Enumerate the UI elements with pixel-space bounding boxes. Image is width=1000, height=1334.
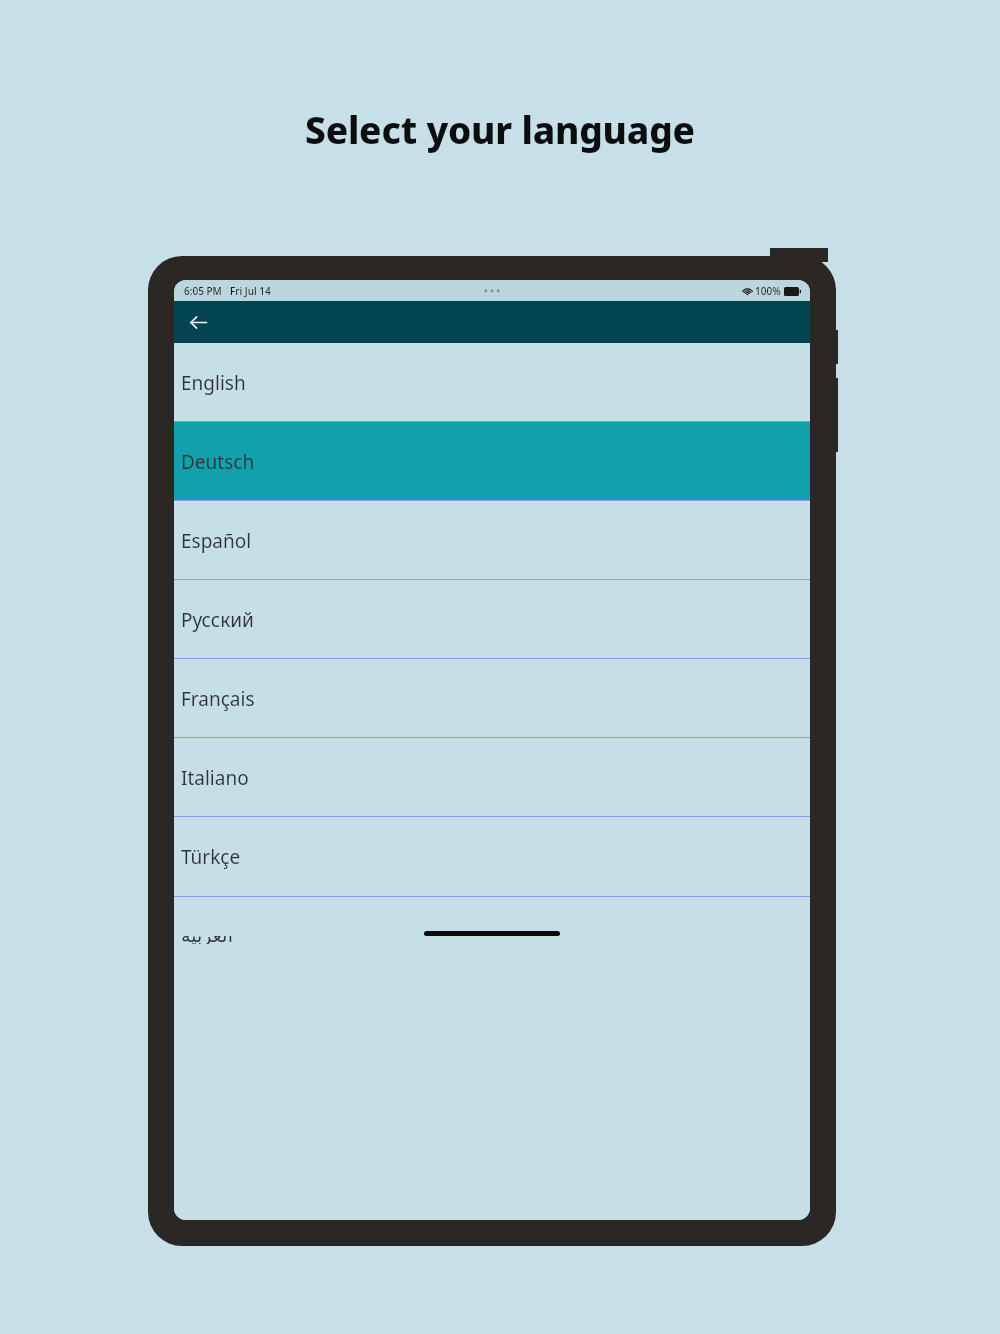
button[interactable]: Deutsch — [174, 422, 810, 501]
button[interactable]: Русский — [174, 580, 810, 659]
staticText: 6:05 PM — [184, 284, 222, 298]
staticText: Español — [181, 528, 252, 554]
staticText: Русский — [181, 607, 254, 633]
staticText: Fri Jul 14 — [230, 284, 271, 298]
button[interactable]: Türkçe — [174, 817, 810, 896]
staticText: 100% — [755, 284, 781, 298]
button[interactable]: Español — [174, 501, 810, 580]
button[interactable]: English — [174, 343, 810, 422]
staticText: Select your language — [305, 104, 695, 154]
button[interactable]: Back — [178, 302, 218, 342]
button[interactable]: Français — [174, 659, 810, 738]
staticText: العربية — [181, 936, 233, 944]
staticText: Italiano — [181, 765, 249, 791]
staticText: Türkçe — [181, 844, 241, 870]
staticText: Français — [181, 686, 255, 712]
button[interactable]: Italiano — [174, 738, 810, 817]
staticText: English — [181, 370, 246, 396]
button[interactable]: العربية — [174, 896, 810, 942]
staticText: Deutsch — [181, 449, 255, 475]
